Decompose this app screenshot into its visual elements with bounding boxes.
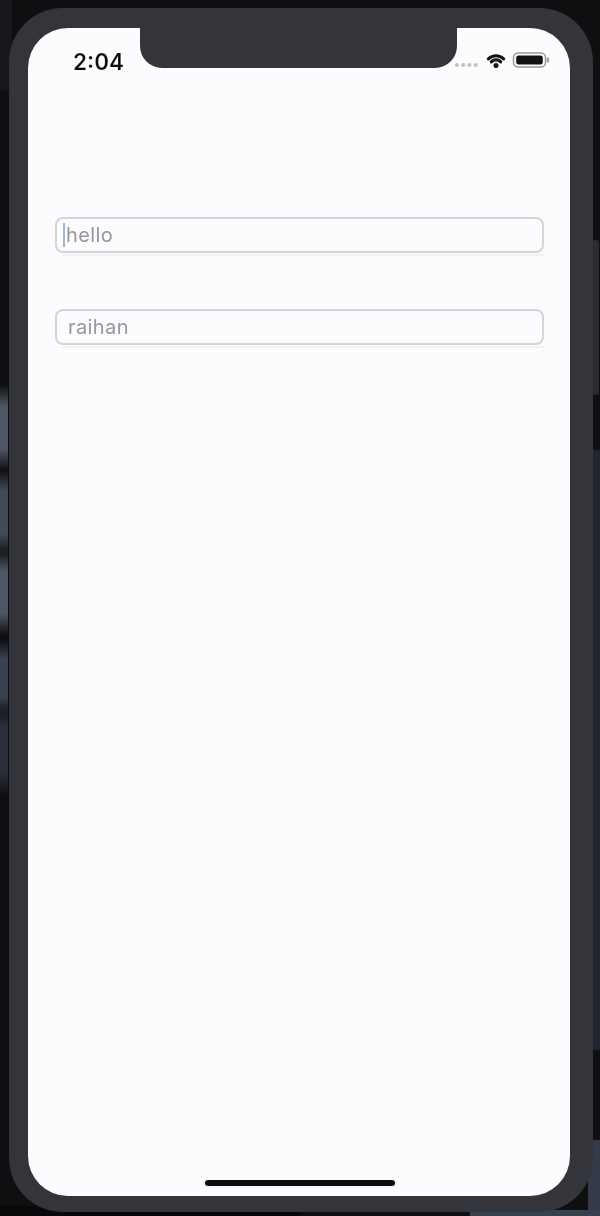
staticText: 2:04: [73, 48, 125, 75]
button[interactable]: hello: [55, 217, 544, 253]
button[interactable]: raihan: [55, 309, 544, 345]
staticText: hello: [66, 223, 114, 247]
staticText: raihan: [68, 315, 129, 339]
